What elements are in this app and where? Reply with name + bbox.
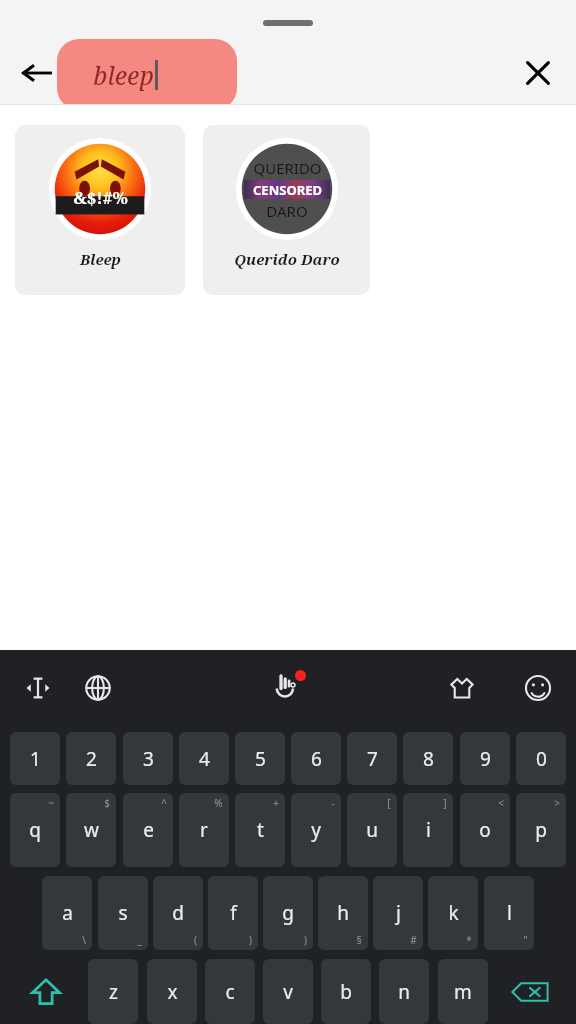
staticText: b — [340, 979, 352, 1005]
staticText: o — [479, 817, 491, 843]
button[interactable]: t — [235, 793, 285, 867]
staticText: * — [466, 933, 472, 947]
staticText: w — [84, 817, 99, 843]
button[interactable]: p — [516, 793, 566, 867]
staticText: p — [535, 817, 547, 843]
staticText: 2 — [86, 746, 97, 772]
staticText: e — [143, 817, 154, 843]
staticText: h — [337, 900, 349, 926]
staticText: DARO — [266, 201, 308, 221]
button[interactable]: Gesture input — [264, 662, 314, 712]
staticText: k — [448, 900, 459, 926]
staticText: < — [498, 796, 504, 810]
button[interactable]: w — [66, 793, 116, 867]
staticText: # — [410, 933, 417, 947]
button[interactable]: m — [438, 959, 488, 1024]
button[interactable]: d — [153, 876, 203, 950]
button[interactable]: y — [291, 793, 341, 867]
staticText: d — [172, 900, 184, 926]
button[interactable]: Language — [74, 664, 122, 712]
button[interactable]: bleep — [57, 39, 237, 110]
button[interactable]: q — [10, 793, 60, 867]
button[interactable]: r — [179, 793, 229, 867]
button[interactable]: Text cursor — [14, 664, 62, 712]
staticText: m — [454, 979, 472, 1005]
staticText: bleep — [93, 58, 154, 92]
button[interactable]: 5 — [235, 732, 285, 785]
staticText: _ — [137, 933, 142, 947]
staticText: 9 — [480, 746, 491, 772]
staticText: y — [311, 817, 321, 843]
staticText: &$!#% — [73, 186, 128, 209]
staticText: s — [118, 900, 128, 926]
staticText: % — [214, 796, 223, 810]
staticText: q — [29, 817, 41, 843]
button[interactable]: 6 — [291, 732, 341, 785]
button[interactable]: v — [263, 959, 313, 1024]
staticText: r — [200, 817, 208, 843]
staticText: u — [366, 817, 378, 843]
button[interactable]: u — [347, 793, 397, 867]
staticText: n — [398, 979, 410, 1005]
staticText: 5 — [255, 746, 266, 772]
staticText: 4 — [199, 746, 210, 772]
staticText: ( — [194, 933, 197, 947]
button[interactable]: g — [263, 876, 313, 950]
button[interactable]: 4 — [179, 732, 229, 785]
button[interactable]: o — [460, 793, 510, 867]
button[interactable]: j — [373, 876, 423, 950]
button[interactable]: i — [403, 793, 453, 867]
button[interactable]: k — [428, 876, 478, 950]
button[interactable]: 8 — [403, 732, 453, 785]
button[interactable]: 2 — [66, 732, 116, 785]
button[interactable]: l — [484, 876, 534, 950]
button[interactable]: &$!#% — [15, 125, 185, 295]
staticText: 6 — [311, 746, 322, 772]
staticText: Bleep — [80, 249, 121, 269]
button[interactable]: c — [205, 959, 255, 1024]
button[interactable]: b — [321, 959, 371, 1024]
staticText: i — [426, 817, 431, 843]
button[interactable]: n — [379, 959, 429, 1024]
button[interactable]: Close — [515, 50, 561, 96]
button[interactable]: Back — [14, 50, 60, 96]
staticText: 1 — [30, 746, 41, 772]
button[interactable]: Shift — [12, 959, 80, 1024]
button[interactable]: s — [98, 876, 148, 950]
staticText: z — [109, 979, 118, 1005]
staticText: \ — [82, 933, 86, 947]
staticText: a — [62, 900, 73, 926]
staticText: c — [225, 979, 235, 1005]
staticText: > — [554, 796, 560, 810]
button[interactable]: h — [318, 876, 368, 950]
button[interactable]: 3 — [123, 732, 173, 785]
button[interactable]: e — [123, 793, 173, 867]
staticText: v — [283, 979, 293, 1005]
button[interactable]: 7 — [347, 732, 397, 785]
button[interactable]: f — [208, 876, 258, 950]
staticText: " — [523, 933, 528, 947]
button[interactable]: a — [42, 876, 92, 950]
staticText: g — [282, 900, 294, 926]
button[interactable]: QUERIDO — [203, 125, 370, 295]
staticText: Querido Daro — [234, 249, 340, 269]
staticText: x — [167, 979, 178, 1005]
staticText: ) — [249, 933, 252, 947]
staticText: f — [230, 900, 237, 926]
button[interactable]: 1 — [10, 732, 60, 785]
staticText: CENSORED — [253, 181, 322, 199]
button[interactable]: 0 — [516, 732, 566, 785]
staticText: $ — [104, 796, 110, 810]
button[interactable]: x — [147, 959, 197, 1024]
staticText: § — [356, 933, 362, 947]
button[interactable]: Themes — [438, 664, 486, 712]
button[interactable]: Emoji — [514, 664, 562, 712]
staticText: 7 — [367, 746, 378, 772]
staticText: ^ — [161, 796, 167, 810]
button[interactable]: z — [88, 959, 138, 1024]
staticText: j — [396, 900, 401, 926]
button[interactable]: 9 — [460, 732, 510, 785]
staticText: QUERIDO — [253, 158, 322, 178]
staticText: 8 — [423, 746, 434, 772]
button[interactable]: Backspace — [496, 959, 564, 1024]
